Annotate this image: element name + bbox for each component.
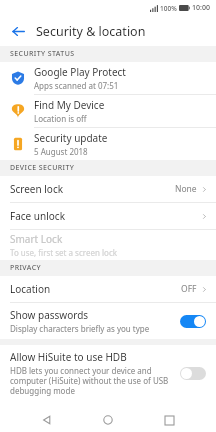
staticText: Display characters briefly as you type [10, 323, 150, 334]
button[interactable]: Location [0, 276, 216, 302]
button[interactable]: On [180, 315, 206, 328]
button[interactable]: Off [180, 367, 206, 380]
staticText: 5 August 2018 [34, 146, 88, 157]
staticText: Find My Device [34, 98, 105, 112]
staticText: HDB lets you connect your device and com… [10, 365, 174, 396]
button[interactable]: Security update [0, 128, 216, 160]
button[interactable]: Find My Device [0, 95, 216, 127]
staticText: Security & location [36, 23, 146, 40]
staticText: To use, first set a screen lock [10, 247, 117, 258]
staticText: Face unlock [10, 209, 201, 223]
staticText: OFF [181, 283, 197, 295]
button[interactable]: Home [94, 408, 122, 432]
staticText: None [175, 183, 197, 195]
staticText: Security update [34, 131, 108, 145]
staticText: Screen lock [10, 182, 175, 196]
staticText: Apps scanned at 07:51 [34, 80, 119, 91]
button[interactable]: Screen lock [0, 176, 216, 202]
staticText: Location is off [34, 113, 87, 124]
button[interactable]: Allow HiSuite to use HDB [0, 345, 216, 401]
staticText: Allow HiSuite to use HDB [10, 350, 127, 364]
staticText: 10:00 [192, 3, 210, 13]
staticText: 100% [160, 4, 177, 13]
staticText: Smart Lock [10, 232, 63, 246]
button[interactable]: Face unlock [0, 203, 216, 229]
button[interactable]: Back [8, 21, 28, 41]
button[interactable]: Google Play Protect [0, 62, 216, 94]
button[interactable]: Back [33, 408, 61, 432]
button[interactable]: Recents [155, 408, 183, 432]
staticText: DEVICE SECURITY [10, 163, 75, 173]
staticText: SECURITY STATUS [10, 49, 75, 59]
staticText: Location [10, 282, 181, 296]
button[interactable]: Show passwords [0, 303, 216, 339]
staticText: PRIVACY [10, 263, 41, 273]
staticText: Show passwords [10, 308, 89, 322]
staticText: Google Play Protect [34, 65, 126, 79]
